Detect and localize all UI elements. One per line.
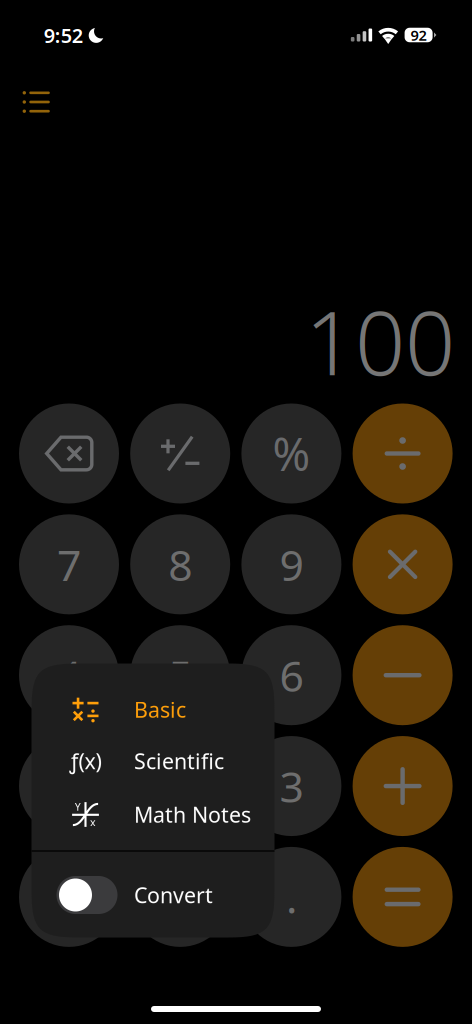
staticText: 0 xyxy=(57,869,81,925)
staticText: 4 xyxy=(57,647,81,704)
button[interactable]: Convert xyxy=(31,852,274,937)
staticText: Y xyxy=(75,799,81,814)
button[interactable]: 6 xyxy=(241,625,341,725)
button[interactable]: History xyxy=(12,79,60,125)
staticText: % xyxy=(272,423,310,484)
staticText: 100 xyxy=(305,283,455,399)
staticText: Math Notes xyxy=(134,800,251,829)
staticText: 3 xyxy=(279,758,303,814)
button[interactable]: Equals xyxy=(353,847,453,947)
button[interactable]: . xyxy=(241,847,341,947)
staticText: Scientific xyxy=(134,747,224,775)
button[interactable]: 8 xyxy=(130,514,230,614)
button[interactable]: Delete xyxy=(19,403,119,503)
staticText: 6 xyxy=(279,647,303,704)
staticText: Convert xyxy=(134,881,213,909)
staticText: x xyxy=(90,815,96,829)
button[interactable]: 3 xyxy=(241,736,341,836)
button[interactable]: 4 xyxy=(19,625,119,725)
staticText: . xyxy=(286,869,297,925)
button[interactable]: 9 xyxy=(241,514,341,614)
button[interactable]: Divide xyxy=(353,403,453,503)
staticText: 5 xyxy=(168,647,192,704)
button[interactable]: Multiply xyxy=(353,514,453,614)
staticText: 2 xyxy=(168,758,192,814)
staticText: ƒ(x) xyxy=(69,747,101,775)
button[interactable]: Key xyxy=(130,847,230,947)
button[interactable]: Minus xyxy=(353,625,453,725)
button[interactable]: Plus xyxy=(353,736,453,836)
button[interactable]: 5 xyxy=(130,625,230,725)
button[interactable]: Percent xyxy=(241,403,341,503)
button[interactable]: 7 xyxy=(19,514,119,614)
staticText: 92 xyxy=(411,25,427,45)
staticText: 8 xyxy=(168,536,192,593)
staticText: 7 xyxy=(57,536,81,593)
button[interactable]: Plus Minus xyxy=(130,403,230,503)
staticText: 9:52 xyxy=(44,22,83,48)
staticText: 1 xyxy=(57,758,81,814)
button[interactable]: 0 xyxy=(19,847,119,947)
button[interactable]: ƒ(x) xyxy=(31,735,274,787)
button[interactable]: Basic xyxy=(31,683,274,736)
button[interactable]: 1 xyxy=(19,736,119,836)
staticText: Basic xyxy=(134,695,186,724)
staticText: 9 xyxy=(279,536,303,593)
button[interactable]: 2 xyxy=(130,736,230,836)
button[interactable]: Y xyxy=(31,788,274,841)
